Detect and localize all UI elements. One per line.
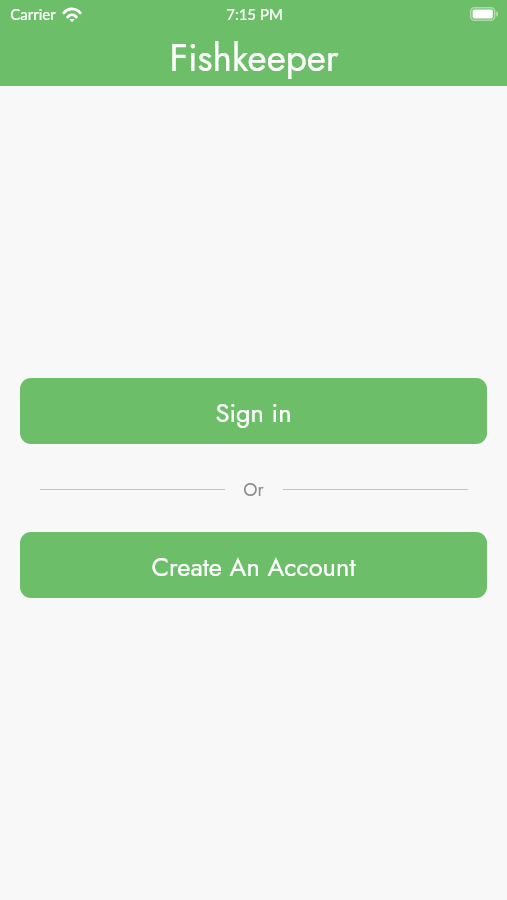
- other: Battery full: [470, 7, 498, 21]
- other: Wi-Fi signal: [62, 7, 82, 22]
- staticText: Or: [243, 477, 264, 503]
- staticText: Carrier: [10, 5, 56, 23]
- button[interactable]: Sign in: [20, 378, 487, 444]
- staticText: Create An Account: [151, 549, 356, 586]
- staticText: Fishkeeper: [169, 31, 339, 84]
- staticText: Sign in: [215, 395, 292, 432]
- button[interactable]: Create An Account: [20, 532, 487, 598]
- staticText: 7:15 PM: [226, 5, 283, 23]
